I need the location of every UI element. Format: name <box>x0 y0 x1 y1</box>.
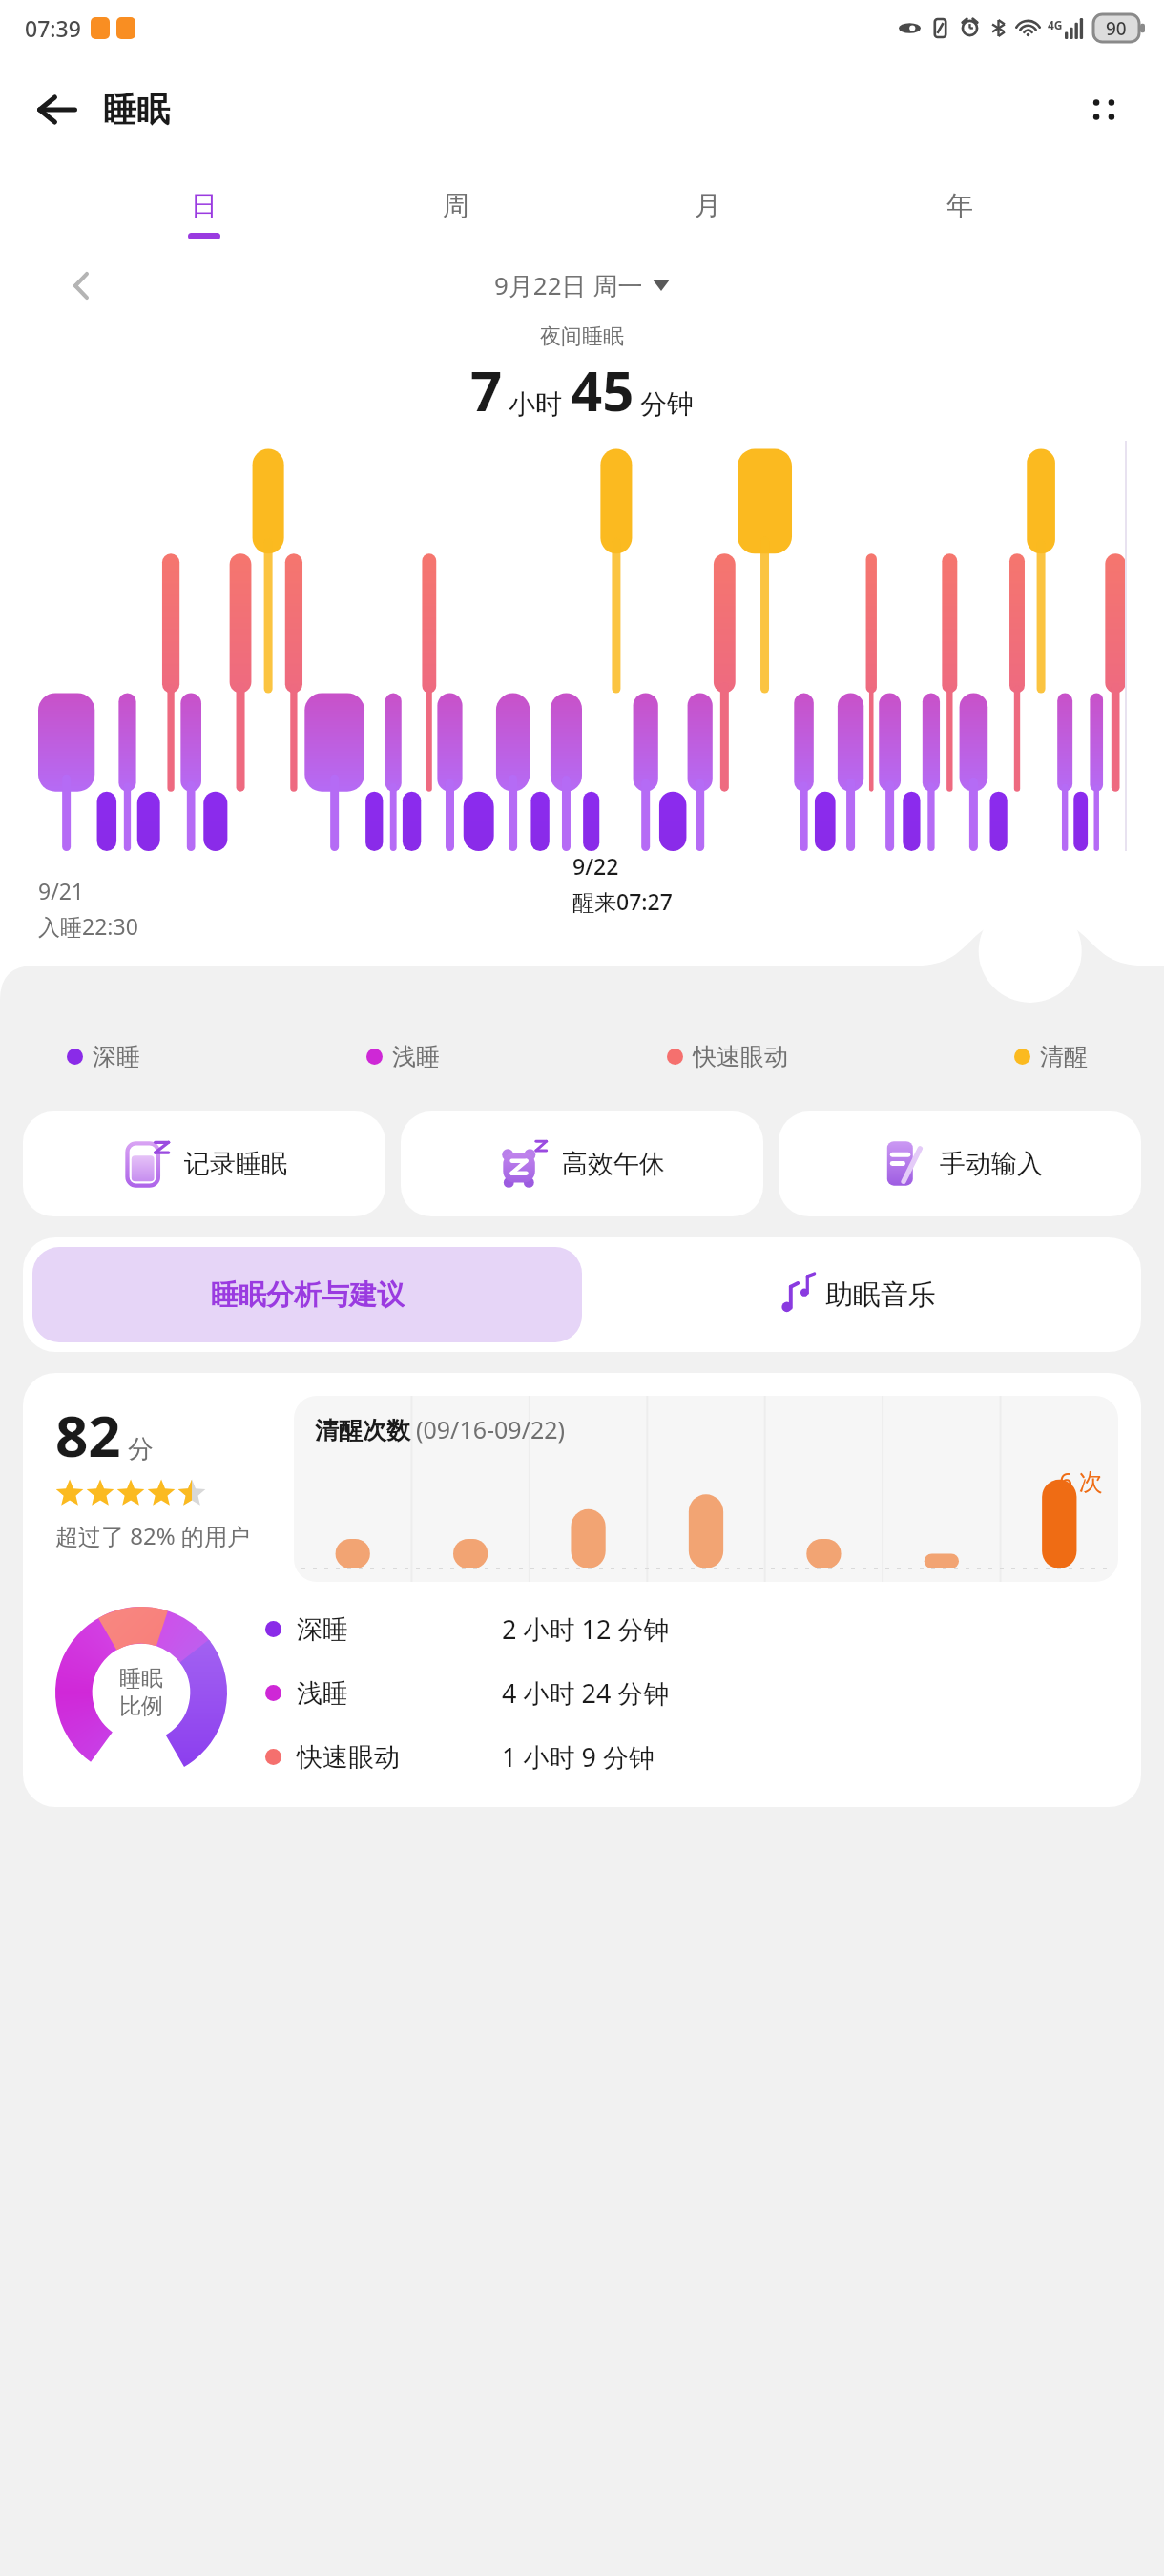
staticText: 醒来07:27 <box>572 886 673 916</box>
button[interactable]: 浅睡 <box>366 1042 440 1071</box>
staticText: 07:39 <box>25 13 81 43</box>
staticText: 6 次 <box>1059 1465 1103 1497</box>
staticText: 4G <box>1048 17 1063 32</box>
button[interactable]: 快速眼动 <box>667 1042 788 1071</box>
staticText: 90 <box>1106 16 1127 41</box>
button[interactable]: 82 <box>23 1373 1141 1807</box>
button[interactable]: More options <box>1067 73 1141 147</box>
button[interactable]: 记录睡眠 <box>23 1111 385 1216</box>
staticText: 睡眠分析与建议 <box>211 1278 405 1313</box>
staticText: 高效午休 <box>562 1148 665 1180</box>
staticText: 45 <box>571 352 634 427</box>
staticText: 深睡 <box>93 1042 140 1071</box>
button[interactable]: 年 <box>924 189 996 233</box>
button[interactable]: Previous day <box>53 259 109 312</box>
staticText: 年 <box>946 189 973 222</box>
staticText: 快速眼动 <box>297 1741 502 1774</box>
staticText: 日 <box>191 189 218 222</box>
button[interactable]: 清醒 <box>1014 1042 1088 1071</box>
staticText: 2 小时 12 分钟 <box>502 1611 670 1647</box>
staticText: 比例 <box>119 1693 163 1720</box>
staticText: 7 <box>470 352 503 427</box>
staticText: 记录睡眠 <box>184 1148 287 1180</box>
staticText: 清醒 <box>1040 1042 1088 1071</box>
button[interactable]: 月 <box>672 189 744 233</box>
staticText: 睡眠 <box>119 1665 163 1693</box>
staticText: 清醒次数 <box>315 1416 410 1445</box>
staticText: 超过了 82% 的用户 <box>55 1520 250 1551</box>
staticText: 浅睡 <box>297 1677 502 1710</box>
staticText: 月 <box>695 189 721 222</box>
button[interactable]: 助眠音乐 <box>582 1247 1132 1342</box>
button[interactable]: Back <box>21 73 94 146</box>
button[interactable]: 日 <box>168 189 240 239</box>
button[interactable]: 深睡 <box>67 1042 140 1071</box>
staticText: 9月22日 周一 <box>494 268 643 302</box>
staticText: 入睡22:30 <box>38 911 138 941</box>
button[interactable]: 周 <box>420 189 492 233</box>
staticText: (09/16-09/22) <box>416 1413 566 1445</box>
staticText: 9/21 <box>38 876 85 905</box>
button[interactable]: 9月22日 周一 <box>494 268 670 302</box>
staticText: 小时 <box>509 387 562 421</box>
button[interactable]: 手动输入 <box>779 1111 1141 1216</box>
staticText: 助眠音乐 <box>825 1278 936 1313</box>
staticText: 4 小时 24 分钟 <box>502 1675 670 1711</box>
staticText: 浅睡 <box>392 1042 440 1071</box>
staticText: 9/22 <box>572 851 619 881</box>
staticText: 分钟 <box>640 387 694 421</box>
staticText: 82 <box>55 1396 121 1474</box>
staticText: 深睡 <box>297 1613 502 1646</box>
staticText: 手动输入 <box>940 1148 1043 1180</box>
staticText: 夜间睡眠 <box>0 323 1164 350</box>
staticText: 分 <box>128 1433 154 1465</box>
staticText: 周 <box>443 189 469 222</box>
staticText: 快速眼动 <box>693 1042 788 1071</box>
button[interactable]: 高效午休 <box>401 1111 763 1216</box>
staticText: 1 小时 9 分钟 <box>502 1739 655 1775</box>
button[interactable]: 睡眠分析与建议 <box>32 1247 582 1342</box>
staticText: 睡眠 <box>103 89 170 131</box>
